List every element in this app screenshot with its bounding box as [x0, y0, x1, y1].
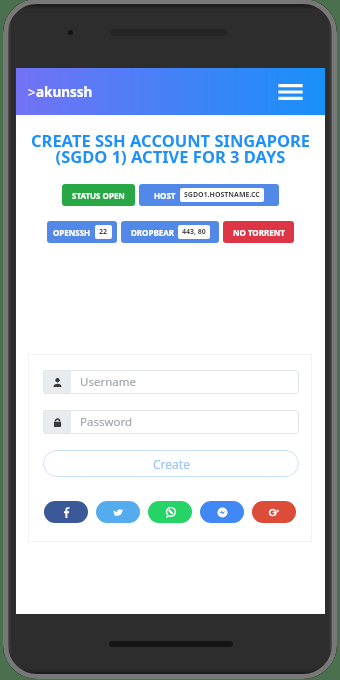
- staticText: DROPBEAR: [131, 227, 174, 238]
- staticText: CREATE SSH ACCOUNT SINGAPORE (SGDO 1) AC…: [26, 129, 315, 168]
- staticText: Create: [153, 456, 190, 472]
- button[interactable]: DROPBEAR: [121, 221, 219, 243]
- button[interactable]: Open navigation menu: [270, 68, 325, 115]
- button[interactable]: Password: [43, 410, 299, 434]
- button[interactable]: Username: [43, 370, 299, 394]
- button[interactable]: HOST: [139, 184, 279, 206]
- button[interactable]: Share on Twitter: [96, 501, 140, 523]
- staticText: Password: [80, 414, 133, 430]
- button[interactable]: Share on Facebook: [44, 501, 88, 523]
- staticText: STATUS OPEN: [72, 190, 125, 201]
- staticText: HOST: [154, 190, 176, 201]
- button[interactable]: OPENSSH: [47, 221, 117, 243]
- staticText: 443, 80: [182, 227, 206, 237]
- button[interactable]: Share on WhatsApp: [148, 501, 192, 523]
- staticText: Username: [80, 374, 136, 390]
- button[interactable]: Share on Messenger: [200, 501, 244, 523]
- button[interactable]: Share on Google Plus: [252, 501, 296, 523]
- button[interactable]: >: [16, 77, 101, 107]
- staticText: OPENSSH: [53, 227, 91, 238]
- button[interactable]: STATUS OPEN: [62, 184, 135, 206]
- staticText: SGDO1.HOSTNAME.CC: [184, 190, 260, 200]
- staticText: 22: [99, 227, 108, 237]
- staticText: akunssh: [36, 83, 93, 101]
- button[interactable]: NO TORRENT: [223, 221, 294, 243]
- button[interactable]: Create: [43, 450, 299, 477]
- staticText: >: [28, 83, 36, 101]
- staticText: NO TORRENT: [233, 227, 285, 238]
